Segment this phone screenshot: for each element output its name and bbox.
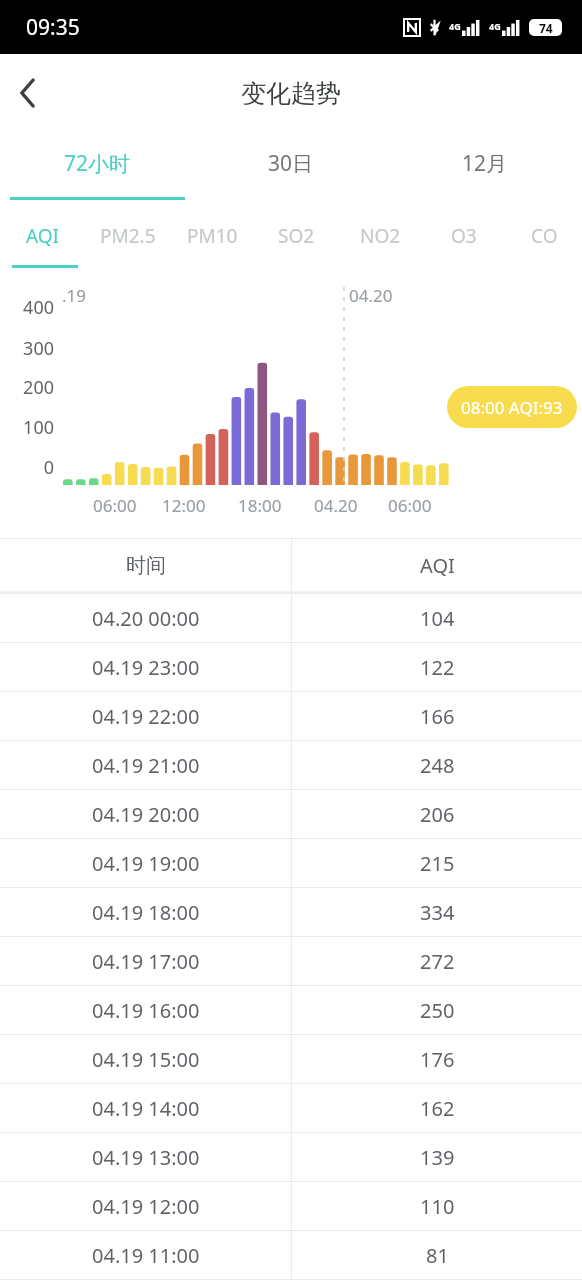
button[interactable]: PM2.5 xyxy=(85,200,170,272)
staticText: 04.19 20:00 xyxy=(92,801,200,828)
staticText: 30日 xyxy=(268,149,314,178)
staticText: 162 xyxy=(420,1095,455,1122)
staticText: PM2.5 xyxy=(100,223,156,249)
staticText: SO2 xyxy=(278,223,315,249)
staticText: 08:00 AQI:93 xyxy=(461,396,563,419)
staticText: 215 xyxy=(420,850,455,877)
staticText: 06:00 xyxy=(388,494,432,517)
button[interactable]: 04.19 16:00 xyxy=(0,986,582,1035)
staticText: 04.19 16:00 xyxy=(92,997,200,1024)
staticText: 变化趋势 xyxy=(241,78,341,109)
staticText: NO2 xyxy=(360,223,401,249)
button[interactable]: 04.19 18:00 xyxy=(0,888,582,937)
button[interactable]: 04.19 11:00 xyxy=(0,1231,582,1280)
staticText: 72小时 xyxy=(64,149,131,178)
button[interactable]: 04.19 17:00 xyxy=(0,937,582,986)
staticText: AQI xyxy=(420,552,455,579)
button[interactable]: 04.19 23:00 xyxy=(0,643,582,692)
button[interactable]: PM10 xyxy=(170,200,254,272)
staticText: 04.19 23:00 xyxy=(92,654,200,681)
staticText: 272 xyxy=(420,948,455,975)
button[interactable]: O3 xyxy=(422,200,506,272)
staticText: 04.19 19:00 xyxy=(92,850,200,877)
staticText: 81 xyxy=(426,1242,449,1269)
staticText: O3 xyxy=(451,223,477,249)
staticText: 04.19 18:00 xyxy=(92,899,200,926)
staticText: 04.19 14:00 xyxy=(92,1095,200,1122)
staticText: 176 xyxy=(420,1046,455,1073)
staticText: 400 xyxy=(4,295,54,320)
button[interactable]: 04.19 19:00 xyxy=(0,839,582,888)
button[interactable]: 04.19 22:00 xyxy=(0,692,582,741)
staticText: 04.19 17:00 xyxy=(92,948,200,975)
staticText: 166 xyxy=(420,703,455,730)
staticText: PM10 xyxy=(187,223,238,249)
button[interactable]: CO xyxy=(506,200,582,272)
button[interactable]: 04.20 00:00 xyxy=(0,594,582,643)
staticText: 139 xyxy=(420,1144,455,1171)
staticText: 248 xyxy=(420,752,455,779)
staticText: .19 xyxy=(62,284,87,307)
staticText: 12月 xyxy=(462,149,508,178)
button[interactable]: 30日 xyxy=(194,132,388,200)
button[interactable]: 04.19 14:00 xyxy=(0,1084,582,1133)
button[interactable]: 72小时 xyxy=(0,132,194,200)
staticText: 100 xyxy=(4,415,54,440)
button[interactable]: 04.19 15:00 xyxy=(0,1035,582,1084)
staticText: 4G xyxy=(449,20,461,32)
staticText: 334 xyxy=(420,899,455,926)
staticText: 122 xyxy=(420,654,455,681)
button[interactable]: NO2 xyxy=(338,200,422,272)
staticText: 04.19 12:00 xyxy=(92,1193,200,1220)
staticText: 74 xyxy=(539,20,553,36)
staticText: 04.19 11:00 xyxy=(92,1242,200,1269)
staticText: CO xyxy=(531,223,558,249)
staticText: 04.20 00:00 xyxy=(92,605,200,632)
staticText: 104 xyxy=(420,605,455,632)
staticText: 4G xyxy=(489,20,501,32)
button[interactable]: Back xyxy=(0,65,56,121)
staticText: 04.19 13:00 xyxy=(92,1144,200,1171)
staticText: 200 xyxy=(4,375,54,400)
staticText: 300 xyxy=(4,336,54,361)
button[interactable]: 12月 xyxy=(388,132,582,200)
staticText: 0 xyxy=(4,455,54,480)
staticText: 250 xyxy=(420,997,455,1024)
staticText: 206 xyxy=(420,801,455,828)
button[interactable]: 04.19 21:00 xyxy=(0,741,582,790)
staticText: 06:00 xyxy=(93,494,137,517)
staticText: AQI xyxy=(26,223,60,249)
button[interactable]: 04.19 12:00 xyxy=(0,1182,582,1231)
button[interactable]: 04.19 20:00 xyxy=(0,790,582,839)
staticText: 04.19 21:00 xyxy=(92,752,200,779)
staticText: 04.19 22:00 xyxy=(92,703,200,730)
staticText: 18:00 xyxy=(238,494,282,517)
staticText: 12:00 xyxy=(162,494,206,517)
button[interactable]: AQI xyxy=(0,200,85,272)
staticText: 04.19 15:00 xyxy=(92,1046,200,1073)
button[interactable]: SO2 xyxy=(254,200,338,272)
staticText: 110 xyxy=(420,1193,455,1220)
button[interactable]: 04.19 13:00 xyxy=(0,1133,582,1182)
staticText: 04.20 xyxy=(314,494,358,517)
staticText: 09:35 xyxy=(26,13,80,42)
staticText: 04.20 xyxy=(349,284,393,307)
staticText: 时间 xyxy=(126,553,166,578)
